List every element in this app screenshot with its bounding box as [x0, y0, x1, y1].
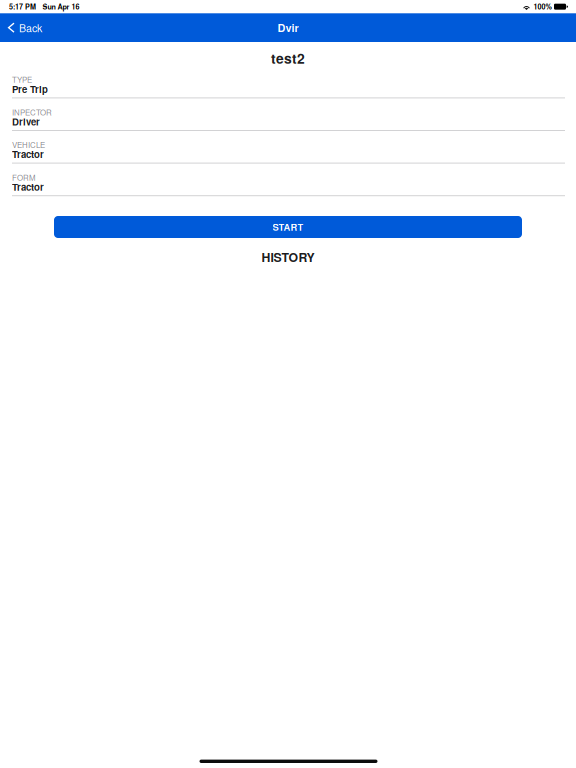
staticText: VEHICLE: [12, 139, 45, 150]
staticText: Dvir: [277, 20, 298, 35]
staticText: FORM: [12, 172, 36, 183]
staticText: Back: [19, 20, 42, 35]
staticText: TYPE: [12, 74, 32, 85]
button[interactable]: VEHICLE: [0, 139, 576, 171]
staticText: Sun Apr 16: [42, 1, 79, 12]
staticText: START: [272, 220, 303, 234]
staticText: 100%: [533, 1, 551, 12]
button[interactable]: Back: [0, 14, 52, 42]
staticText: Tractor: [12, 180, 44, 194]
staticText: Driver: [12, 115, 40, 128]
staticText: test2: [271, 48, 305, 68]
button[interactable]: FORM: [0, 172, 576, 204]
staticText: Tractor: [12, 147, 44, 161]
staticText: 5:17 PM: [9, 1, 36, 12]
staticText: INPECTOR: [12, 106, 52, 118]
button[interactable]: START: [54, 216, 522, 238]
staticText: HISTORY: [261, 248, 314, 266]
button[interactable]: TYPE: [0, 74, 576, 106]
staticText: Pre Trip: [12, 82, 48, 96]
button[interactable]: INPECTOR: [0, 106, 576, 138]
